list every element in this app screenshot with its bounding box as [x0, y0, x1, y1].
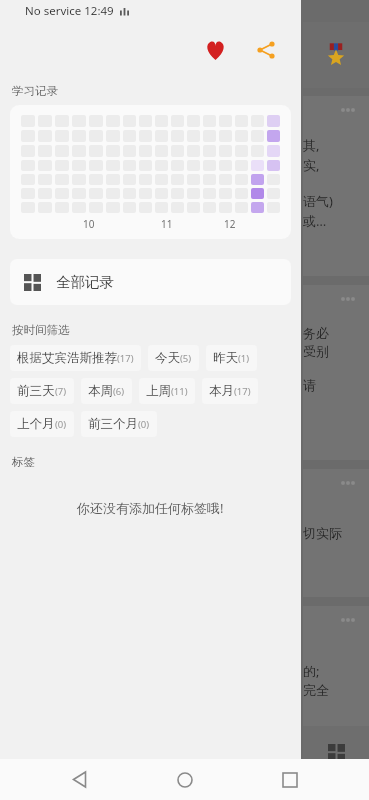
staticText: 或… [303, 212, 327, 230]
button[interactable]: Share [245, 29, 287, 71]
button[interactable]: 前三天 [10, 378, 74, 404]
button[interactable]: 今天 [148, 345, 199, 371]
button[interactable]: 上个月 [10, 411, 74, 437]
staticText: (17) [234, 385, 251, 398]
staticText: (17) [117, 352, 134, 365]
staticText: (1) [238, 352, 250, 365]
staticText: 标签 [12, 455, 35, 469]
staticText: No service 12:49 [25, 3, 114, 19]
button[interactable]: 昨天 [206, 345, 257, 371]
button[interactable]: Recent apps [264, 759, 316, 800]
staticText: (11) [171, 385, 188, 398]
staticText: 本月 [209, 383, 234, 399]
staticText: 实, [303, 156, 320, 174]
button[interactable]: Favorite [194, 29, 236, 71]
staticText: 其, [303, 136, 320, 154]
button[interactable]: Back [53, 759, 105, 800]
staticText: 11 [161, 217, 173, 231]
staticText: 受别 [303, 343, 329, 359]
staticText: (5) [180, 352, 192, 365]
staticText: 今天 [155, 350, 180, 366]
staticText: 本周 [88, 383, 113, 399]
staticText: 你还没有添加任何标签哦! [77, 499, 224, 517]
button[interactable]: 上周 [139, 378, 195, 404]
staticText: 昨天 [213, 350, 238, 366]
staticText: 切实际 [303, 525, 342, 541]
staticText: 12 [224, 217, 236, 231]
staticText: 上周 [146, 383, 171, 399]
staticText: 上个月 [17, 416, 55, 432]
staticText: (0) [138, 418, 150, 431]
button[interactable]: 本月 [202, 378, 258, 404]
button[interactable]: Home [159, 759, 211, 800]
button[interactable]: 全部记录 [10, 259, 291, 305]
button[interactable]: 本周 [81, 378, 132, 404]
staticText: 语气) [303, 192, 333, 210]
staticText: 学习记录 [12, 84, 58, 98]
staticText: 根据艾宾浩斯推荐 [17, 350, 117, 366]
staticText: 全部记录 [56, 273, 114, 291]
staticText: (7) [55, 385, 67, 398]
button[interactable]: 根据艾宾浩斯推荐 [10, 345, 141, 371]
staticText: 务必 [303, 325, 329, 341]
staticText: 完全 [303, 682, 329, 698]
staticText: 请 [303, 377, 316, 393]
button[interactable]: 10 [10, 105, 291, 239]
staticText: (6) [113, 385, 125, 398]
staticText: 的; [303, 662, 320, 680]
staticText: 10 [83, 217, 95, 231]
button[interactable]: 前三个月 [81, 411, 157, 437]
staticText: 前三个月 [88, 416, 138, 432]
staticText: 前三天 [17, 383, 55, 399]
staticText: (0) [55, 418, 67, 431]
staticText: 按时间筛选 [12, 323, 70, 337]
